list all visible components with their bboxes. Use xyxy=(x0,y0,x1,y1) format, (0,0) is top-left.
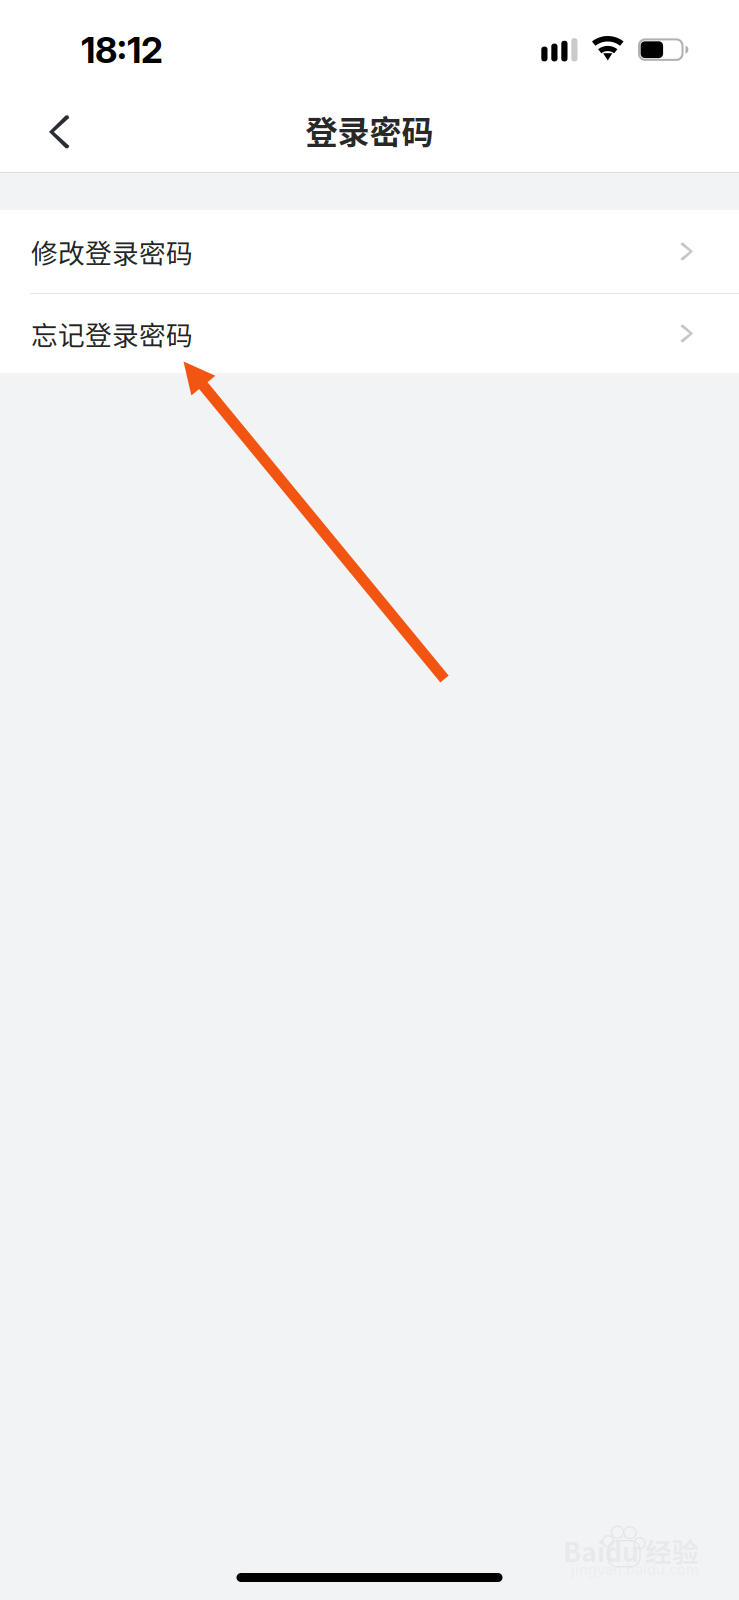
staticText: 修改登录密码 xyxy=(31,232,193,271)
button[interactable]: Back xyxy=(22,92,100,172)
staticText: 忘记登录密码 xyxy=(31,314,193,353)
staticText: jingyan.baidu.com xyxy=(571,1561,699,1578)
button[interactable]: 修改登录密码 xyxy=(0,210,739,293)
button[interactable]: 忘记登录密码 xyxy=(0,294,739,373)
staticText: Baidu 经验 xyxy=(563,1531,699,1570)
staticText: 18:12 xyxy=(81,28,163,72)
staticText: 登录密码 xyxy=(305,107,433,153)
